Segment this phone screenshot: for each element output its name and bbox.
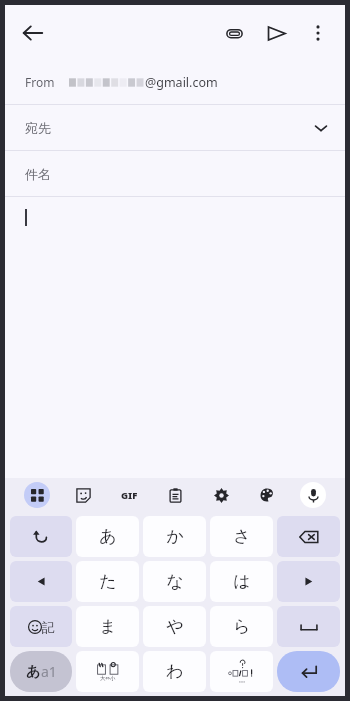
button[interactable]: Stickers — [60, 478, 106, 512]
button[interactable]: 件名 — [5, 151, 345, 196]
button[interactable]: Enter — [277, 651, 340, 692]
button[interactable]: 宛先 — [5, 105, 345, 150]
button[interactable]: ら — [210, 606, 273, 647]
button[interactable]: Switch input mode — [10, 651, 72, 692]
staticText: か — [166, 526, 184, 547]
staticText: た — [99, 571, 117, 592]
staticText: あ — [99, 526, 117, 547]
staticText: 件名 — [25, 166, 51, 182]
staticText: や — [166, 616, 184, 637]
staticText: 大⇔小 — [100, 675, 116, 682]
staticText: @gmail.com — [145, 74, 218, 91]
button[interactable]: Cursor right — [277, 561, 340, 602]
button[interactable]: GIF — [106, 478, 152, 512]
button[interactable]: From — [5, 60, 345, 104]
button[interactable]: Punctuation — [210, 651, 273, 692]
button[interactable]: Themes — [244, 478, 290, 512]
button[interactable]: Switch keyboard — [14, 478, 60, 512]
button[interactable]: わ — [143, 651, 206, 692]
button[interactable]: Clipboard — [152, 478, 198, 512]
staticText: は — [233, 571, 251, 592]
staticText: さ — [233, 526, 251, 547]
button[interactable]: Settings — [198, 478, 244, 512]
button[interactable]: か — [143, 516, 206, 557]
button[interactable]: Undo — [10, 516, 72, 557]
staticText: あ — [26, 663, 41, 681]
staticText: From — [25, 74, 55, 90]
staticText: わ — [166, 661, 184, 682]
staticText: GIF — [121, 489, 138, 502]
button[interactable]: た — [76, 561, 139, 602]
staticText: な — [166, 571, 184, 592]
button[interactable]: More options — [297, 12, 339, 54]
button[interactable]: は — [210, 561, 273, 602]
button[interactable]: Cursor left — [10, 561, 72, 602]
button[interactable]: Space — [277, 606, 340, 647]
button[interactable]: や — [143, 606, 206, 647]
staticText: 記 — [42, 619, 55, 635]
button[interactable]: Back — [11, 11, 55, 55]
staticText: 宛先 — [25, 120, 51, 136]
button[interactable]: ま — [76, 606, 139, 647]
staticText: ら — [233, 616, 251, 637]
button[interactable] — [5, 197, 345, 478]
button[interactable]: な — [143, 561, 206, 602]
button[interactable]: Attach file — [213, 12, 255, 54]
button[interactable]: Backspace — [277, 516, 340, 557]
button[interactable]: Dakuten and small kana — [76, 651, 139, 692]
staticText: ま — [99, 616, 117, 637]
button[interactable]: Emoji and symbols — [10, 606, 72, 647]
button[interactable]: あ — [76, 516, 139, 557]
button[interactable]: Send — [255, 12, 297, 54]
staticText: a1 — [41, 662, 57, 681]
button[interactable]: さ — [210, 516, 273, 557]
button[interactable]: Voice input — [290, 478, 336, 512]
